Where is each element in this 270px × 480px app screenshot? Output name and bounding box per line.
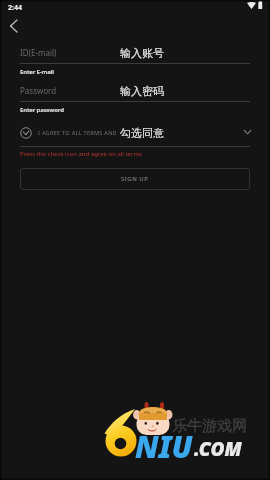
button[interactable]: SIGN UP	[20, 168, 250, 190]
staticText: 输入密码	[120, 84, 164, 98]
button[interactable]: I AGREE TO ALL TERMS AND	[18, 124, 250, 142]
staticText: Enter password	[20, 106, 64, 114]
staticText: NIU	[135, 426, 193, 467]
staticText: Enter E-mail	[20, 68, 54, 76]
staticText: ID(E-mail)	[20, 47, 57, 58]
staticText: I AGREE TO ALL TERMS AND	[38, 129, 117, 136]
staticText: .COM	[194, 436, 242, 462]
button[interactable]: Back	[2, 15, 24, 37]
staticText: Press the check icon and agree on all te…	[20, 150, 142, 158]
staticText: SIGN UP	[121, 175, 149, 183]
staticText: 输入账号	[120, 46, 164, 60]
staticText: Password	[20, 85, 57, 96]
staticText: 2:44	[8, 3, 22, 13]
staticText: 勾选同意	[120, 126, 164, 140]
staticText: 乐牛游戏网	[172, 417, 247, 436]
